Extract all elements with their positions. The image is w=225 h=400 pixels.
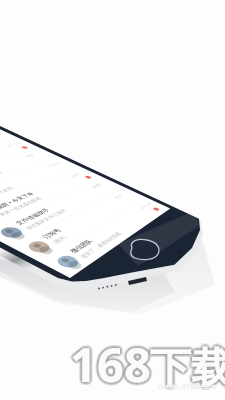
other: Phone product photo (0, 0, 225, 400)
